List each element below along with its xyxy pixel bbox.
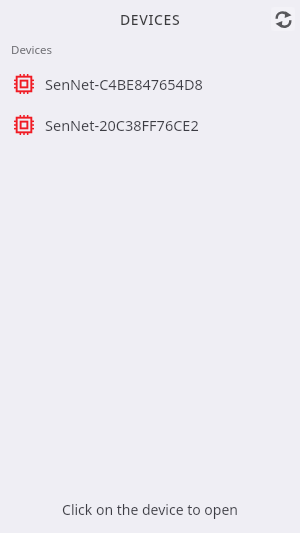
staticText: Devices xyxy=(11,42,52,58)
staticText: Click on the device to open xyxy=(62,500,238,519)
button[interactable]: SenNet-20C38FF76CE2 xyxy=(0,104,300,145)
staticText: SenNet-C4BE847654D8 xyxy=(45,74,203,94)
staticText: SenNet-20C38FF76CE2 xyxy=(45,115,199,135)
button[interactable]: SenNet-C4BE847654D8 xyxy=(0,63,300,104)
staticText: DEVICES xyxy=(120,10,181,29)
button[interactable]: Refresh devices xyxy=(271,7,295,31)
